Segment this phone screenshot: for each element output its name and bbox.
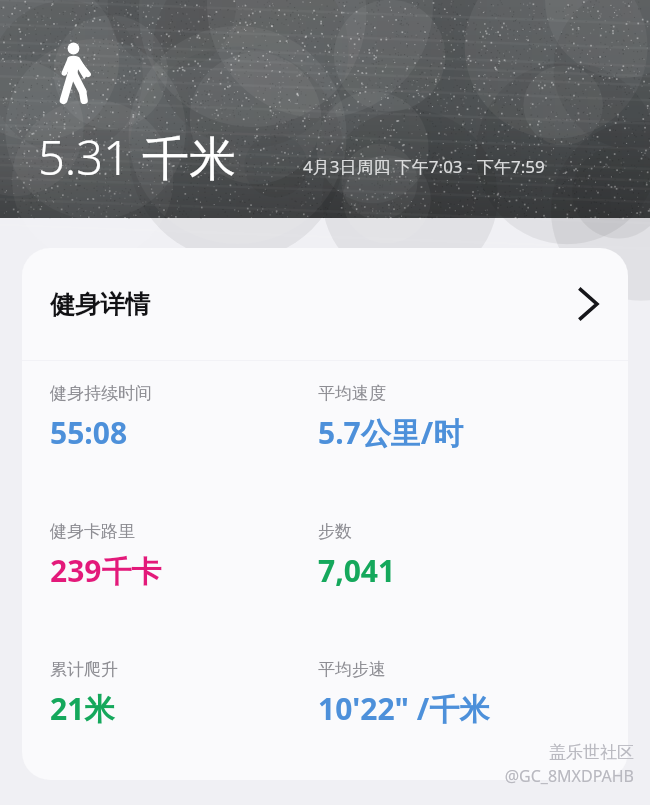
staticText: 累计爬升 bbox=[50, 659, 118, 680]
staticText: 盖乐世社区 bbox=[549, 742, 634, 763]
button[interactable]: 健身详情 bbox=[22, 248, 628, 360]
staticText: 健身卡路里 bbox=[50, 521, 135, 542]
staticText: 步数 bbox=[318, 521, 352, 542]
button[interactable]: 累计爬升 bbox=[22, 637, 628, 775]
staticText: @GC_8MXDPAHB bbox=[504, 765, 634, 787]
button[interactable]: 健身持续时间 bbox=[22, 361, 628, 499]
staticText: 平均步速 bbox=[318, 659, 386, 680]
staticText: 10'22" /千米 bbox=[318, 688, 490, 729]
staticText: 55:08 bbox=[50, 412, 128, 453]
staticText: 21米 bbox=[50, 688, 115, 729]
staticText: 4月3日周四 下午7:03 - 下午7:59 bbox=[303, 155, 545, 178]
staticText: 5.31 千米 bbox=[38, 125, 237, 189]
staticText: 7,041 bbox=[318, 550, 396, 591]
staticText: 239千卡 bbox=[50, 550, 162, 591]
button[interactable]: 健身卡路里 bbox=[22, 499, 628, 637]
staticText: 健身详情 bbox=[50, 289, 150, 320]
staticText: 5.7公里/时 bbox=[318, 412, 464, 453]
staticText: 健身持续时间 bbox=[50, 383, 152, 404]
other: Walking workout bbox=[56, 42, 94, 104]
staticText: 平均速度 bbox=[318, 383, 386, 404]
